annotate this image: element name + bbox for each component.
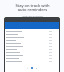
staticText: Stay on track with auto reminders <box>15 3 50 13</box>
staticText: Never miss a payment <box>22 15 43 18</box>
